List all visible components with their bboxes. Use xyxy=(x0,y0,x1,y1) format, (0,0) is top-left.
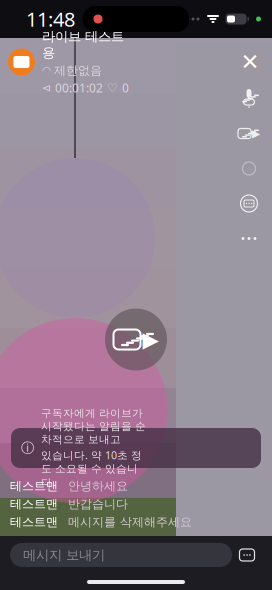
button[interactable]: More options xyxy=(235,227,263,249)
staticText: ▶ xyxy=(142,327,158,352)
button[interactable]: Chat options xyxy=(232,541,262,569)
staticText: 반갑습니다 xyxy=(68,497,128,511)
button[interactable]: Turn off camera xyxy=(235,122,263,144)
button[interactable]: 테스트맨 xyxy=(0,477,272,495)
button[interactable]: 메시지 보내기 xyxy=(10,543,232,567)
staticText: 테스트맨 xyxy=(10,479,58,493)
staticText: ♡ xyxy=(107,81,118,94)
staticText: 테스트맨 xyxy=(10,497,58,511)
staticText: 0 xyxy=(122,80,129,96)
staticText: 제한없음 xyxy=(54,63,102,78)
staticText: 구독자에게 라이브가 시작됐다는 알림을 순차적으로 보내고 xyxy=(41,407,146,446)
staticText: 안녕하세요 xyxy=(68,479,128,493)
staticText: ◠ xyxy=(42,64,51,76)
button[interactable]: Mute microphone xyxy=(235,87,263,109)
staticText: 메시지 보내기 xyxy=(23,547,105,563)
staticText: ⊲ xyxy=(42,82,51,94)
button[interactable]: Close xyxy=(234,46,266,78)
staticText: 테스트맨 xyxy=(10,515,58,529)
staticText: 있습니다. 약 10초 정도 소요될 수 있습니다. xyxy=(41,448,142,489)
staticText: ✕ xyxy=(240,49,259,75)
button[interactable]: Flip camera xyxy=(235,157,263,179)
staticText: ⓘ xyxy=(21,440,34,456)
staticText: 00:01:02 xyxy=(55,80,103,96)
staticText: 라이브 테스트용 xyxy=(42,28,124,61)
staticText: 메시지를 삭제해주세요 xyxy=(68,515,192,529)
button[interactable]: 테스트맨 xyxy=(0,513,272,531)
button[interactable]: Captions xyxy=(235,192,263,214)
staticText: 11:48 xyxy=(26,6,75,32)
staticText: ▶ xyxy=(252,127,260,139)
button[interactable]: 테스트맨 xyxy=(0,495,272,513)
